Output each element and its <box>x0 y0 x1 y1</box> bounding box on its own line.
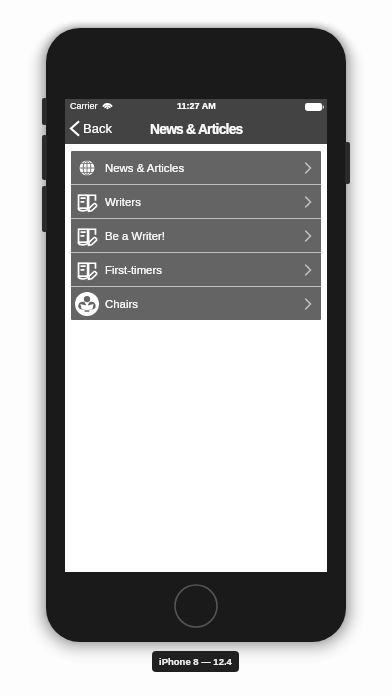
staticText: News & Articles <box>105 162 185 175</box>
staticText: First-timers <box>105 264 162 277</box>
staticText: Carrier <box>70 101 98 111</box>
staticText: Writers <box>105 196 141 209</box>
staticText: Chairs <box>105 298 138 311</box>
staticText: Be a Writer! <box>105 230 165 243</box>
staticText: News & Articles <box>150 122 243 137</box>
button[interactable]: Back <box>65 118 120 139</box>
button[interactable]: Writers <box>71 185 321 218</box>
staticText: 11:27 AM <box>177 101 216 111</box>
button[interactable]: First-timers <box>71 253 321 286</box>
staticText: iPhone 8 — 12.4 <box>159 656 232 667</box>
button[interactable]: Chairs <box>71 287 321 320</box>
staticText: Back <box>83 121 112 136</box>
button[interactable]: Be a Writer! <box>71 219 321 252</box>
button[interactable]: News & Articles <box>71 151 321 184</box>
